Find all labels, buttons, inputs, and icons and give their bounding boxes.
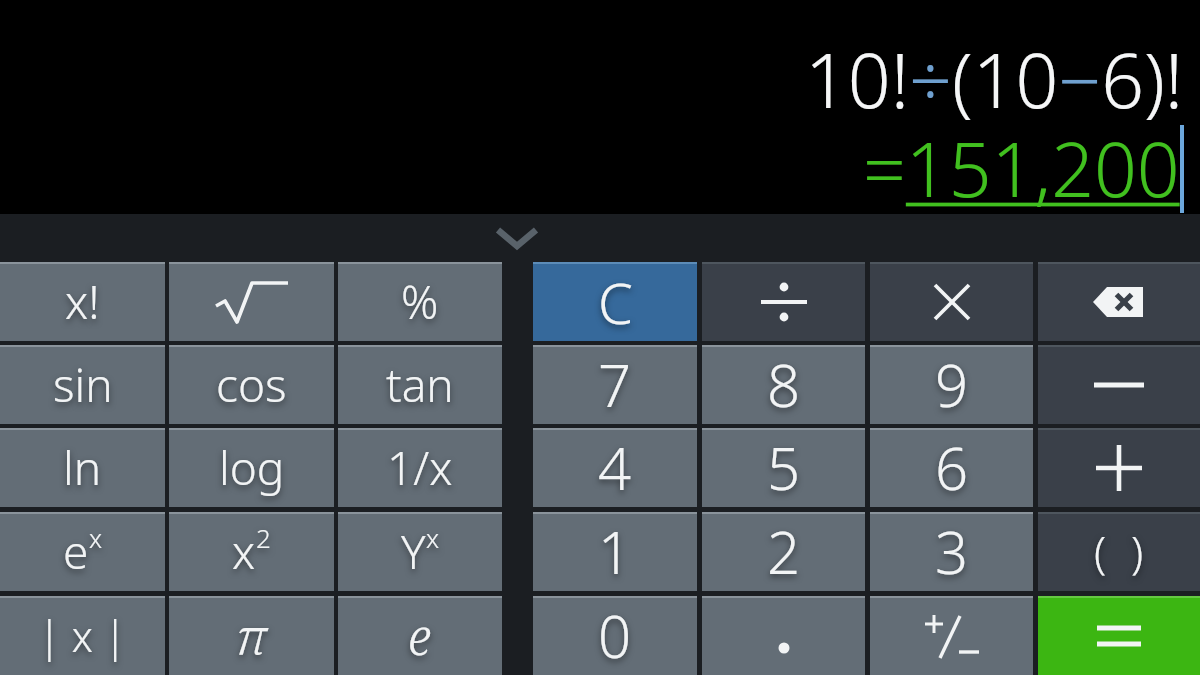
staticText: 6 bbox=[935, 428, 969, 507]
button[interactable]: 7 bbox=[533, 345, 697, 424]
staticText: e bbox=[408, 602, 432, 670]
button[interactable]: x bbox=[169, 512, 334, 591]
staticText: % bbox=[401, 270, 439, 333]
button[interactable]: e bbox=[0, 512, 165, 591]
button[interactable]: C bbox=[533, 262, 697, 341]
staticText: x bbox=[232, 520, 256, 583]
button[interactable] bbox=[477, 214, 557, 262]
button[interactable] bbox=[702, 262, 865, 341]
staticText: 1 bbox=[598, 512, 632, 591]
staticText: log bbox=[219, 436, 285, 499]
button[interactable] bbox=[702, 596, 865, 675]
staticText: 4 bbox=[598, 428, 632, 507]
button[interactable]: sin bbox=[0, 345, 165, 424]
staticText: 2 bbox=[767, 512, 801, 591]
button[interactable] bbox=[870, 596, 1033, 675]
staticText: 7 bbox=[598, 345, 632, 424]
staticText: cos bbox=[216, 353, 287, 416]
button[interactable]: ( bbox=[1038, 512, 1200, 591]
button[interactable]: 5 bbox=[702, 428, 865, 507]
button[interactable]: x! bbox=[0, 262, 165, 341]
button[interactable]: tan bbox=[338, 345, 502, 424]
button[interactable] bbox=[870, 262, 1033, 341]
button[interactable]: 6 bbox=[870, 428, 1033, 507]
button[interactable]: cos bbox=[169, 345, 334, 424]
button[interactable]: log bbox=[169, 428, 334, 507]
staticText: ) bbox=[1131, 522, 1144, 582]
staticText: 5 bbox=[767, 428, 801, 507]
staticText: tan bbox=[386, 353, 454, 416]
button[interactable]: 3 bbox=[870, 512, 1033, 591]
staticText: 8 bbox=[767, 345, 801, 424]
staticText: 1/x bbox=[387, 436, 453, 499]
button[interactable] bbox=[1038, 345, 1200, 424]
staticText: =151,200 bbox=[863, 117, 1180, 214]
staticText: x bbox=[89, 520, 103, 555]
staticText: Y bbox=[401, 520, 426, 583]
button[interactable]: 9 bbox=[870, 345, 1033, 424]
button[interactable]: 1 bbox=[533, 512, 697, 591]
button[interactable]: 4 bbox=[533, 428, 697, 507]
staticText: x! bbox=[65, 270, 100, 333]
button[interactable]: 0 bbox=[533, 596, 697, 675]
staticText: e bbox=[63, 520, 89, 583]
button[interactable]: | x | bbox=[0, 596, 165, 675]
staticText: ( bbox=[1094, 522, 1107, 582]
staticText: 0 bbox=[598, 596, 632, 675]
staticText: 3 bbox=[935, 512, 969, 591]
button[interactable]: 8 bbox=[702, 345, 865, 424]
button[interactable]: 2 bbox=[702, 512, 865, 591]
staticText: C bbox=[598, 264, 633, 340]
button[interactable] bbox=[1038, 262, 1200, 341]
staticText: 9 bbox=[935, 345, 969, 424]
staticText: sin bbox=[53, 353, 113, 416]
button[interactable] bbox=[169, 262, 334, 341]
button[interactable]: π bbox=[169, 596, 334, 675]
staticText: | x | bbox=[38, 607, 127, 664]
button[interactable]: 1/x bbox=[338, 428, 502, 507]
button[interactable]: ln bbox=[0, 428, 165, 507]
button[interactable]: e bbox=[338, 596, 502, 675]
staticText: ln bbox=[63, 436, 102, 499]
staticText: x bbox=[426, 520, 440, 555]
button[interactable] bbox=[1038, 596, 1200, 675]
staticText: 2 bbox=[256, 520, 271, 555]
button[interactable]: % bbox=[338, 262, 502, 341]
button[interactable]: Y bbox=[338, 512, 502, 591]
staticText: 10!÷(10−6)! bbox=[805, 28, 1184, 130]
button[interactable] bbox=[1038, 428, 1200, 507]
staticText: π bbox=[236, 602, 267, 670]
